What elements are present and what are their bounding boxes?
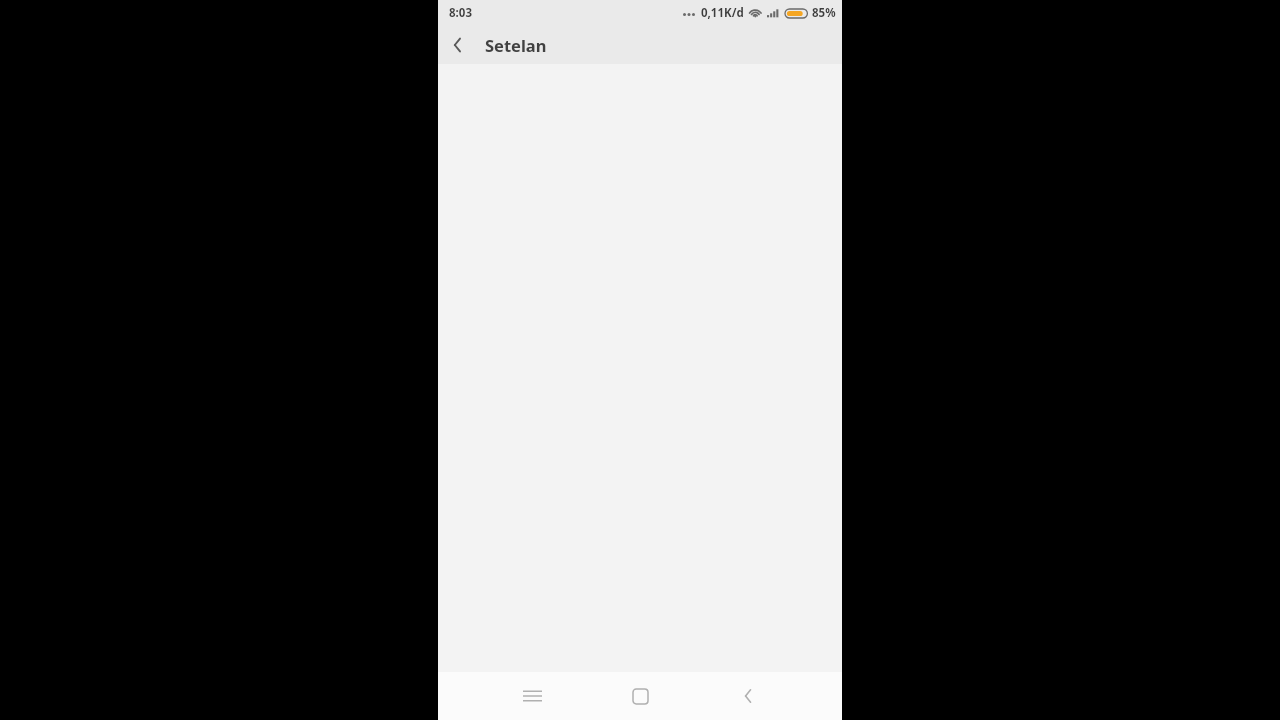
staticText: 0,11K/d [701, 5, 744, 21]
button[interactable]: Home [618, 674, 662, 718]
staticText: 85% [812, 5, 836, 21]
button[interactable]: Back [438, 25, 478, 64]
button[interactable]: Back [726, 674, 770, 718]
button[interactable]: Recent apps [510, 674, 554, 718]
staticText: 8:03 [449, 5, 472, 21]
staticText: Setelan [485, 34, 547, 56]
